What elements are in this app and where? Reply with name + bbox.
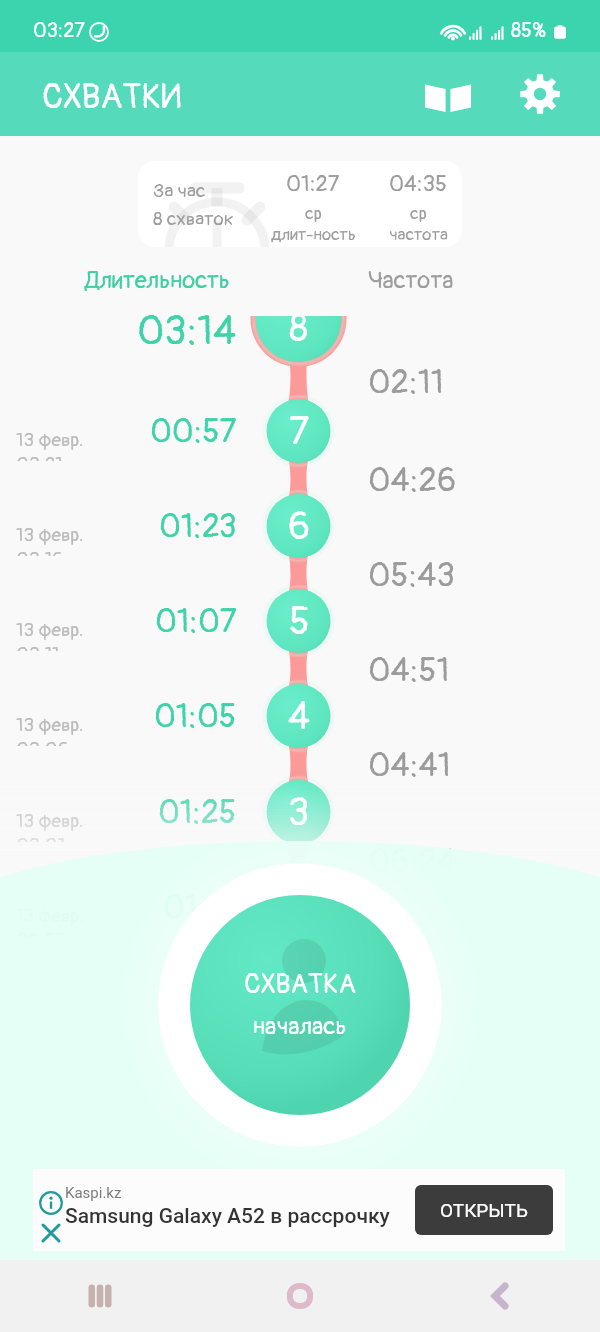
button[interactable]: 06:24 <box>368 835 457 887</box>
staticText: 03:11 <box>16 642 60 651</box>
button[interactable]: 01:07 <box>10 592 237 652</box>
staticText: 04:35 <box>389 170 447 197</box>
staticText: Частота <box>368 266 454 296</box>
button[interactable]: 04:26 <box>368 454 457 506</box>
staticText: СХВАТКИ <box>42 76 182 118</box>
button[interactable]: 03:14 <box>10 302 237 362</box>
button[interactable]: Назад <box>400 1260 600 1332</box>
staticText: 01:25 <box>158 793 237 833</box>
staticText: 01:05 <box>154 697 237 737</box>
staticText: За час <box>153 179 206 203</box>
staticText: 85% <box>511 18 547 43</box>
button[interactable]: 01:05 <box>10 687 237 747</box>
staticText: 13 февр. <box>16 428 84 452</box>
button[interactable]: 01:23 <box>10 497 237 557</box>
staticText: 05:43 <box>368 555 455 596</box>
button[interactable]: 01:25 <box>10 783 237 843</box>
staticText: 13 февр. <box>16 713 84 737</box>
staticText: 04:41 <box>368 745 451 786</box>
staticText: 01:07 <box>155 602 237 642</box>
staticText: 01:23 <box>159 507 237 547</box>
button[interactable]: 04:51 <box>368 644 450 696</box>
staticText: 03:27 <box>33 18 85 43</box>
button[interactable]: 04:41 <box>368 739 451 791</box>
staticText: 6 <box>288 503 311 550</box>
staticText: 3 <box>288 789 310 836</box>
staticText: ОТКРЫТЬ <box>440 1199 528 1221</box>
staticText: 7 <box>289 408 310 455</box>
button[interactable]: 00:57 <box>10 402 237 462</box>
staticText: ср <box>305 203 322 224</box>
staticText: 13 февр. <box>16 618 84 642</box>
staticText: 00:57 <box>150 412 237 452</box>
staticText: 04:51 <box>368 650 450 691</box>
button[interactable]: Kaspi.kz <box>33 1169 565 1251</box>
button[interactable]: Недавние приложения <box>0 1260 200 1332</box>
staticText: 03:06 <box>16 737 69 746</box>
staticText: 8 схваток <box>153 207 234 231</box>
staticText: 5 <box>289 598 310 645</box>
staticText: 03:14 <box>137 307 237 357</box>
button[interactable]: За час <box>138 161 462 247</box>
staticText: СХВАТКА <box>244 968 356 1002</box>
staticText: 01:27 <box>286 170 340 197</box>
staticText: началась <box>253 1012 347 1042</box>
button[interactable]: СХВАТКА <box>158 863 442 1147</box>
button[interactable]: Справочник <box>420 68 476 124</box>
staticText: 2 <box>288 884 310 931</box>
staticText: 06:24 <box>368 841 457 882</box>
button[interactable]: 02:11 <box>368 356 444 408</box>
staticText: 13 февр. <box>16 523 84 547</box>
staticText: длит-ность <box>271 224 356 245</box>
staticText: 8 <box>289 316 309 352</box>
staticText: 4 <box>288 693 311 740</box>
staticText: Длительность <box>85 266 230 296</box>
staticText: 01:13 <box>163 888 237 928</box>
button[interactable]: 01:13 <box>10 878 237 938</box>
staticText: ср <box>410 203 427 224</box>
staticText: частота <box>389 224 448 245</box>
staticText: 04:26 <box>368 460 457 501</box>
button[interactable]: Домой <box>200 1260 400 1332</box>
button[interactable]: ОТКРЫТЬ <box>415 1185 553 1235</box>
button[interactable]: 05:43 <box>368 549 455 601</box>
staticText: Kaspi.kz <box>65 1184 122 1202</box>
staticText: 02:11 <box>368 362 444 403</box>
staticText: 03:21 <box>16 452 63 461</box>
staticText: 03:16 <box>16 547 64 556</box>
staticText: 03:01 <box>16 833 66 842</box>
staticText: Samsung Galaxy A52 в рассрочку <box>65 1204 390 1229</box>
button[interactable]: Настройки <box>512 66 568 122</box>
staticText: 13 февр. <box>16 809 84 833</box>
